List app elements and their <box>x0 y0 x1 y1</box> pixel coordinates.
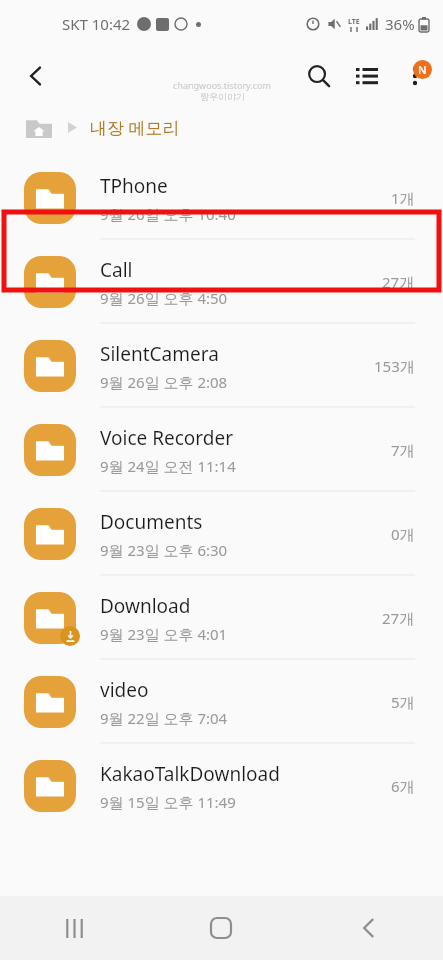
staticText: video <box>100 677 149 703</box>
staticText: SilentCamera <box>100 341 219 367</box>
staticText: N <box>418 62 427 77</box>
button[interactable]: KakaoTalkDownload <box>0 744 443 828</box>
button[interactable]: View as <box>343 52 391 100</box>
button[interactable]: TPhone <box>0 156 443 240</box>
staticText: 내장 메모리 <box>90 116 180 139</box>
button[interactable]: Recents <box>38 896 110 960</box>
staticText: 9월 24일 오전 11:14 <box>100 456 236 476</box>
button[interactable]: Download <box>0 576 443 660</box>
staticText: 36% <box>385 14 415 34</box>
staticText: 6개 <box>391 776 415 796</box>
staticText: 153개 <box>374 356 415 376</box>
staticText: Download <box>100 593 191 619</box>
staticText: Call <box>100 257 133 283</box>
button[interactable]: Call <box>0 240 443 324</box>
staticText: 27개 <box>382 272 415 292</box>
staticText: 5개 <box>391 692 415 712</box>
staticText: 27개 <box>382 608 415 628</box>
staticText: LTE <box>348 17 360 27</box>
staticText: 1개 <box>391 188 415 208</box>
button[interactable]: Back <box>333 896 405 960</box>
staticText: 9월 22일 오후 7:04 <box>100 708 228 728</box>
button[interactable]: Documents <box>0 492 443 576</box>
button[interactable]: Search <box>295 52 343 100</box>
staticText: TPhone <box>100 173 168 199</box>
staticText: 짱우이야기 <box>200 91 245 102</box>
staticText: 9월 26일 오후 4:50 <box>100 288 228 308</box>
staticText: changwoos.tistory.com <box>173 79 271 91</box>
staticText: SKT 10:42 <box>62 14 131 34</box>
button[interactable]: Home <box>185 896 257 960</box>
staticText: KakaoTalkDownload <box>100 761 280 787</box>
button[interactable]: Back <box>12 52 60 100</box>
button[interactable]: More options <box>391 52 439 100</box>
button[interactable]: SilentCamera <box>0 324 443 408</box>
button[interactable]: 내장 메모리 <box>90 116 180 139</box>
staticText: 9월 26일 오후 2:08 <box>100 372 228 392</box>
button[interactable]: Home <box>24 115 54 140</box>
staticText: 7개 <box>391 440 415 460</box>
staticText: 9월 23일 오후 6:30 <box>100 540 228 560</box>
button[interactable]: video <box>0 660 443 744</box>
button[interactable]: Voice Recorder <box>0 408 443 492</box>
staticText: 9월 23일 오후 4:01 <box>100 624 228 644</box>
staticText: Voice Recorder <box>100 425 234 451</box>
staticText: 0개 <box>391 524 415 544</box>
staticText: 9월 26일 오후 10:40 <box>100 204 236 224</box>
staticText: Documents <box>100 509 203 535</box>
staticText: 9월 15일 오후 11:49 <box>100 792 236 812</box>
